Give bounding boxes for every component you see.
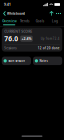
button[interactable]: Start Session <box>2 57 31 65</box>
staticText: Log <box>52 19 58 23</box>
staticText: Sessions <box>4 46 16 50</box>
button[interactable]: Overview <box>1 18 17 26</box>
button[interactable]: Back <box>2 9 7 18</box>
button[interactable]: Trends <box>17 18 32 26</box>
button[interactable]: Share <box>48 9 55 18</box>
staticText: Trends <box>20 19 29 23</box>
staticText: CURRENT SCORE <box>4 29 32 34</box>
staticText: Up from 72.4 <box>41 37 60 40</box>
button[interactable]: Goals <box>32 18 47 26</box>
button[interactable]: Log <box>47 18 62 26</box>
staticText: Overview <box>2 19 16 23</box>
staticText: 12 of 20 done <box>38 46 60 50</box>
staticText: +2.4% <box>21 36 31 41</box>
staticText: Goals <box>36 19 44 23</box>
staticText: Notes <box>39 59 47 63</box>
staticText: Whiteboard <box>7 11 25 15</box>
button[interactable]: More options <box>55 9 62 18</box>
staticText: 9:41 <box>4 2 11 7</box>
staticText: 76.0 <box>4 34 18 43</box>
staticText: Start Session <box>8 59 25 63</box>
button[interactable]: Notes <box>33 57 62 65</box>
